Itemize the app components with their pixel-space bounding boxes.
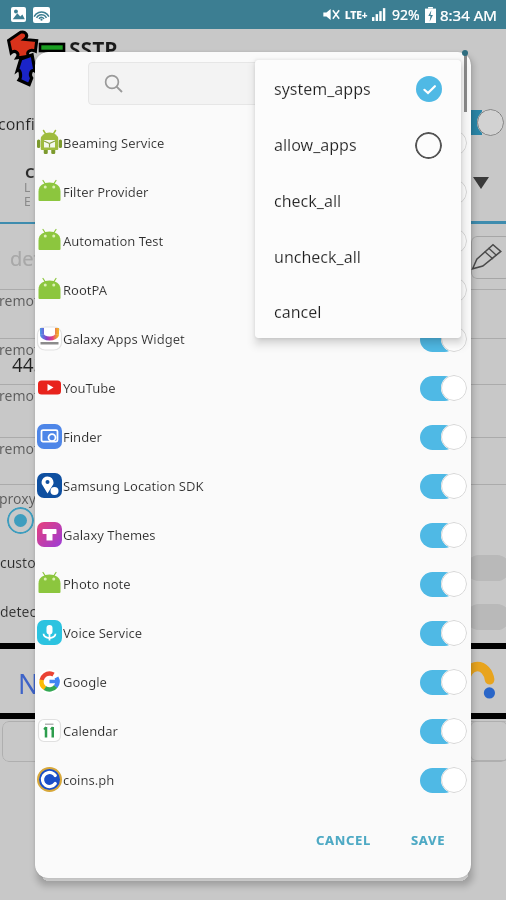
button[interactable]: uncheck_all bbox=[255, 229, 461, 285]
button[interactable]: Toggle Galaxy Themes bbox=[420, 518, 471, 552]
button[interactable]: Toggle coins.ph bbox=[420, 763, 471, 797]
staticText: L bbox=[24, 179, 31, 195]
button[interactable]: Samsung Location SDK bbox=[35, 461, 471, 510]
staticText: YouTube bbox=[63, 379, 116, 397]
staticText: uncheck_all bbox=[274, 246, 361, 268]
button[interactable]: Toggle Filter Provider bbox=[420, 175, 471, 209]
staticText: 8:34 AM bbox=[440, 5, 497, 25]
button[interactable]: Calendar bbox=[35, 706, 471, 755]
staticText: customize bbox=[0, 553, 67, 572]
staticText: SSTP bbox=[69, 35, 118, 64]
button[interactable]: cancel bbox=[255, 285, 461, 338]
button[interactable]: CANCEL bbox=[306, 823, 382, 857]
staticText: Automation Test bbox=[63, 232, 164, 250]
button[interactable]: Toggle YouTube bbox=[420, 371, 471, 405]
staticText: LTE+ bbox=[345, 8, 368, 22]
button[interactable]: Photo note bbox=[35, 559, 471, 608]
staticText: CANCEL bbox=[316, 831, 372, 849]
button[interactable]: Galaxy Themes bbox=[35, 510, 471, 559]
staticText: Calendar bbox=[63, 722, 118, 740]
button[interactable]: Galaxy Apps Widget bbox=[35, 314, 471, 363]
staticText: SAVE bbox=[411, 831, 446, 849]
staticText: configuration bbox=[0, 113, 100, 135]
button[interactable]: Finder bbox=[35, 412, 471, 461]
staticText: E bbox=[24, 193, 31, 209]
staticText: 443 bbox=[12, 352, 45, 378]
staticText: remote password bbox=[0, 439, 115, 458]
button[interactable]: Toggle Voice Service bbox=[420, 616, 471, 650]
staticText: proxy. bbox=[0, 489, 40, 508]
button[interactable]: Google bbox=[35, 657, 471, 706]
staticText: allow_apps bbox=[274, 134, 357, 156]
button[interactable]: Toggle RootPA bbox=[420, 273, 471, 307]
button[interactable]: Toggle Galaxy Apps Widget bbox=[420, 322, 471, 356]
staticText: remote port bbox=[0, 340, 79, 359]
staticText: Photo note bbox=[63, 575, 131, 593]
staticText: Voice Service bbox=[63, 624, 143, 642]
staticText: Beaming Service bbox=[63, 134, 165, 152]
button[interactable]: Filter Provider bbox=[35, 167, 471, 216]
staticText: Galaxy Apps Widget bbox=[63, 330, 185, 348]
button[interactable]: Toggle Calendar bbox=[420, 714, 471, 748]
staticText: N bbox=[18, 665, 39, 702]
button[interactable]: check_all bbox=[255, 173, 461, 229]
staticText: RootPA bbox=[63, 281, 108, 299]
button[interactable]: system_apps bbox=[255, 61, 461, 117]
button[interactable]: Voice Service bbox=[35, 608, 471, 657]
staticText: Filter Provider bbox=[63, 183, 149, 201]
button[interactable]: Toggle Finder bbox=[420, 420, 471, 454]
staticText: system_apps bbox=[274, 78, 371, 100]
staticText: cancel bbox=[274, 301, 322, 323]
button[interactable]: Toggle Google bbox=[420, 665, 471, 699]
button[interactable]: coins.ph bbox=[35, 755, 471, 804]
button[interactable]: Search bbox=[88, 62, 443, 105]
button[interactable]: RootPA bbox=[35, 265, 471, 314]
button[interactable]: Toggle Samsung Location SDK bbox=[420, 469, 471, 503]
staticText: remote hostname bbox=[0, 291, 117, 310]
staticText: remote username bbox=[0, 386, 118, 405]
staticText: Galaxy Themes bbox=[63, 526, 156, 544]
staticText: default bbox=[10, 245, 77, 272]
staticText: coins.ph bbox=[63, 771, 115, 789]
staticText: check_all bbox=[274, 190, 342, 212]
button[interactable]: Toggle Photo note bbox=[420, 567, 471, 601]
button[interactable]: allow_apps bbox=[255, 117, 461, 173]
staticText: Samsung Location SDK bbox=[63, 477, 204, 495]
staticText: Finder bbox=[63, 428, 102, 446]
button[interactable]: Toggle Beaming Service bbox=[420, 126, 471, 160]
button[interactable]: Automation Test bbox=[35, 216, 471, 265]
staticText: 92% bbox=[392, 5, 420, 24]
button[interactable]: SAVE bbox=[401, 823, 456, 857]
staticText: detect network bbox=[0, 602, 100, 621]
staticText: Google bbox=[63, 673, 107, 691]
button[interactable]: Toggle Automation Test bbox=[420, 224, 471, 258]
button[interactable]: YouTube bbox=[35, 363, 471, 412]
staticText: C bbox=[25, 162, 35, 182]
button[interactable]: Beaming Service bbox=[35, 118, 471, 167]
